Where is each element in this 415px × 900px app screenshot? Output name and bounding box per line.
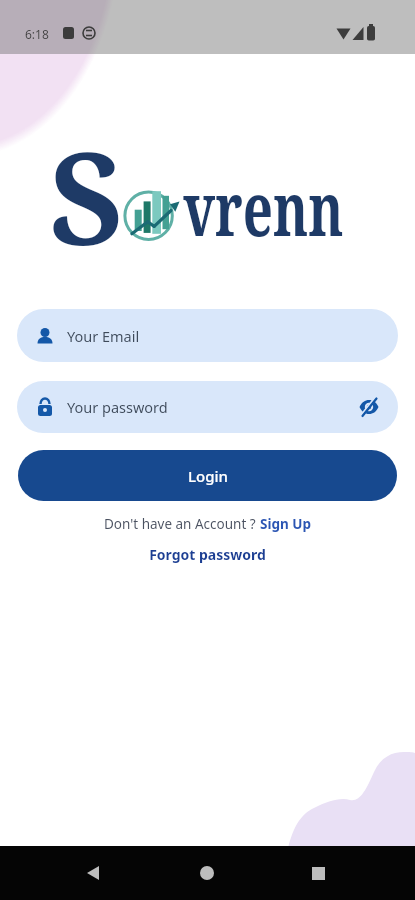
button[interactable]: Sign Up: [260, 515, 312, 533]
staticText: Login: [188, 466, 228, 486]
staticText: Your Email: [67, 326, 140, 346]
button[interactable]: Your Email: [17, 309, 398, 362]
button[interactable]: [358, 396, 380, 418]
staticText: S: [49, 108, 124, 282]
button[interactable]: [0, 846, 139, 900]
staticText: Don't have an Account ?: [104, 515, 260, 533]
button[interactable]: [139, 846, 277, 900]
staticText: Your password: [67, 397, 358, 417]
button[interactable]: Login: [18, 450, 397, 501]
staticText: 6:18: [25, 26, 49, 42]
button[interactable]: Forgot password: [0, 545, 415, 564]
button[interactable]: Your password: [17, 381, 398, 433]
staticText: vrenn: [183, 156, 344, 258]
button[interactable]: [277, 846, 415, 900]
